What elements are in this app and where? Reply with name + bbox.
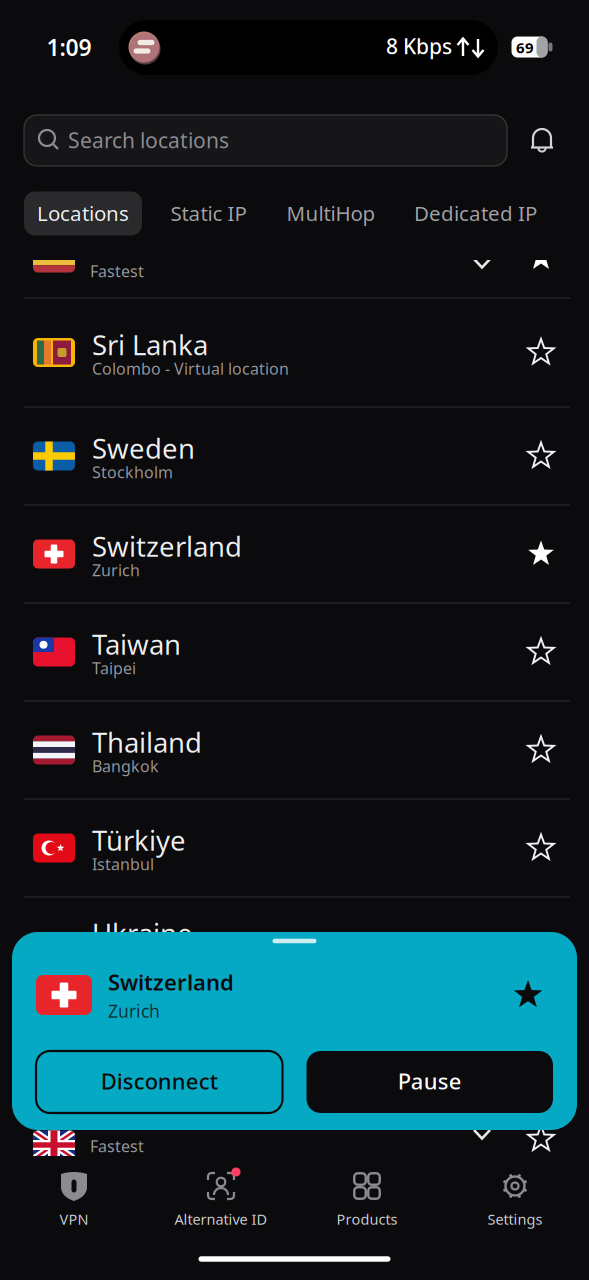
staticText: Ukraine [92,915,193,951]
button[interactable]: Fastest [0,0,589,1280]
staticText: Fastest [90,1135,144,1157]
button[interactable]: Taiwan [0,0,589,1280]
staticText: Products [336,1209,397,1229]
button[interactable]: Locations [0,0,589,1280]
button[interactable]: Switzerland [0,0,589,1280]
button[interactable]: Thailand [0,0,589,1280]
staticText: Settings [487,1209,542,1229]
button[interactable]: Static IP [0,0,589,1280]
button[interactable]: Disconnect [0,0,589,1280]
button[interactable]: Türkiye [0,0,589,1280]
staticText: 69 [516,37,534,57]
staticText: Türkiye [92,822,186,858]
staticText: Search locations [68,126,229,154]
button[interactable]: Dedicated IP [0,0,589,1280]
staticText: Static IP [170,199,246,227]
staticText: Alternative ID [174,1209,267,1229]
staticText: Thailand [92,724,202,760]
button[interactable] [0,0,589,1280]
staticText: Taipei [92,657,136,679]
button[interactable]: VPN [0,0,589,1280]
staticText: Zurich [92,559,140,581]
button[interactable]: Sweden [0,0,589,1280]
staticText: MultiHop [286,199,375,227]
staticText: Disconnect [101,1066,218,1096]
staticText: Istanbul [92,853,154,875]
staticText: Zurich [108,999,160,1023]
staticText: Taiwan [92,626,181,662]
button[interactable]: Alternative ID [0,0,589,1280]
staticText: 8 Kbps [386,32,452,60]
button[interactable]: Settings [0,0,589,1280]
button[interactable]: Sri Lanka [0,0,589,1280]
staticText: Switzerland [108,967,234,997]
staticText: Stockholm [92,461,173,483]
staticText: Sweden [92,430,195,466]
button[interactable]: Products [0,0,589,1280]
button[interactable]: Search locations [0,0,589,1280]
staticText: Colombo - Virtual location [92,358,289,379]
staticText: 1:09 [46,32,91,62]
staticText: United Kingdom [92,1094,304,1130]
staticText: Pause [398,1066,462,1096]
staticText: Fastest [90,260,144,282]
staticText: Locations [37,199,129,227]
staticText: Dedicated IP [414,199,537,227]
staticText: VPN [59,1209,88,1229]
staticText: Sri Lanka [92,326,208,363]
button[interactable]: Pause [0,0,589,1280]
button[interactable]: MultiHop [0,0,589,1280]
staticText: Bangkok [92,755,159,777]
button[interactable]: Fastest [0,0,589,1280]
staticText: Switzerland [92,528,242,564]
